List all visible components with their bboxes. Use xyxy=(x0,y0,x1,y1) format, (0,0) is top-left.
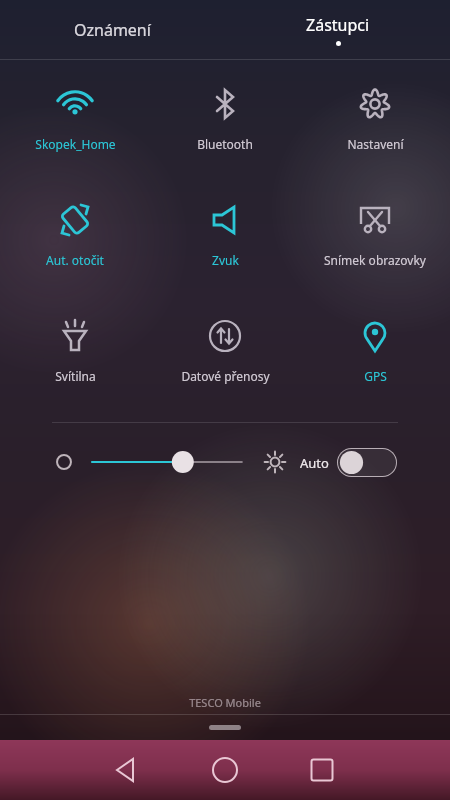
button[interactable]: Snímek obrazovky xyxy=(300,198,450,268)
staticText: Nastavení xyxy=(347,136,404,152)
button[interactable]: Nastavení xyxy=(300,82,450,152)
button[interactable]: Back xyxy=(100,744,152,796)
staticText: GPS xyxy=(364,368,387,384)
staticText: Svítilna xyxy=(55,368,96,384)
button[interactable]: Skopek_Home xyxy=(0,82,150,152)
button[interactable]: Zástupci xyxy=(225,0,450,60)
staticText: Snímek obrazovky xyxy=(324,252,426,268)
button[interactable]: GPS xyxy=(300,314,450,384)
staticText: Datové přenosy xyxy=(181,368,270,384)
button[interactable] xyxy=(209,725,241,730)
button[interactable]: Aut. otočit xyxy=(0,198,150,268)
staticText: Auto xyxy=(300,454,329,472)
button[interactable]: Bluetooth xyxy=(150,82,300,152)
button[interactable]: Oznámení xyxy=(0,0,225,60)
staticText: Bluetooth xyxy=(197,136,253,152)
other: Low brightness xyxy=(52,450,76,474)
button[interactable]: Home xyxy=(199,744,251,796)
staticText: TESCO Mobile xyxy=(0,695,450,710)
other: High brightness xyxy=(262,449,288,475)
button[interactable]: Brightness slider xyxy=(88,442,246,482)
staticText: Zástupci xyxy=(306,14,370,36)
staticText: Zvuk xyxy=(212,252,239,268)
button[interactable]: Auto xyxy=(300,448,397,477)
staticText: Aut. otočit xyxy=(46,252,104,268)
button[interactable]: Datové přenosy xyxy=(150,314,300,384)
staticText: Skopek_Home xyxy=(35,136,116,152)
button[interactable]: Recents xyxy=(296,744,348,796)
button[interactable]: Zvuk xyxy=(150,198,300,268)
button[interactable]: Svítilna xyxy=(0,314,150,384)
staticText: Oznámení xyxy=(74,19,151,41)
